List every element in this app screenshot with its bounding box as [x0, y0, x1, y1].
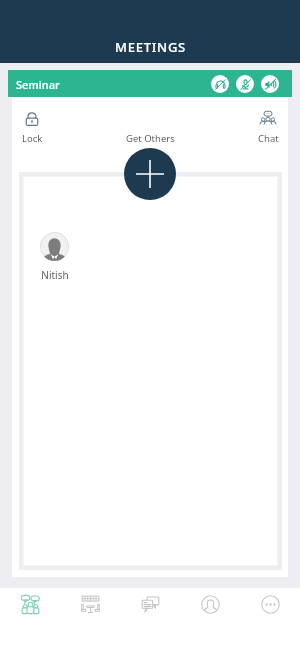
button[interactable]: Contacts: [180, 588, 240, 649]
staticText: Chat: [258, 132, 279, 145]
button[interactable]: Nitish: [40, 232, 69, 282]
button[interactable]: Microphone off: [236, 75, 254, 93]
button[interactable]: Chat: [120, 588, 180, 649]
button[interactable]: Lock: [20, 111, 44, 145]
button[interactable]: Chat: [256, 111, 280, 145]
button[interactable]: Rooms: [60, 588, 120, 649]
staticText: Get Others: [126, 132, 175, 145]
button[interactable]: Headset off: [211, 75, 229, 93]
button[interactable]: Get Others: [0, 132, 300, 145]
button[interactable]: Add participant: [124, 148, 176, 200]
staticText: Nitish: [41, 268, 69, 282]
staticText: Seminar: [16, 77, 60, 92]
button[interactable]: Speaker off: [261, 75, 279, 93]
button[interactable]: More: [240, 588, 300, 649]
staticText: Lock: [22, 132, 43, 145]
button[interactable]: Meetings: [0, 588, 60, 649]
staticText: MEETINGS: [115, 38, 187, 56]
